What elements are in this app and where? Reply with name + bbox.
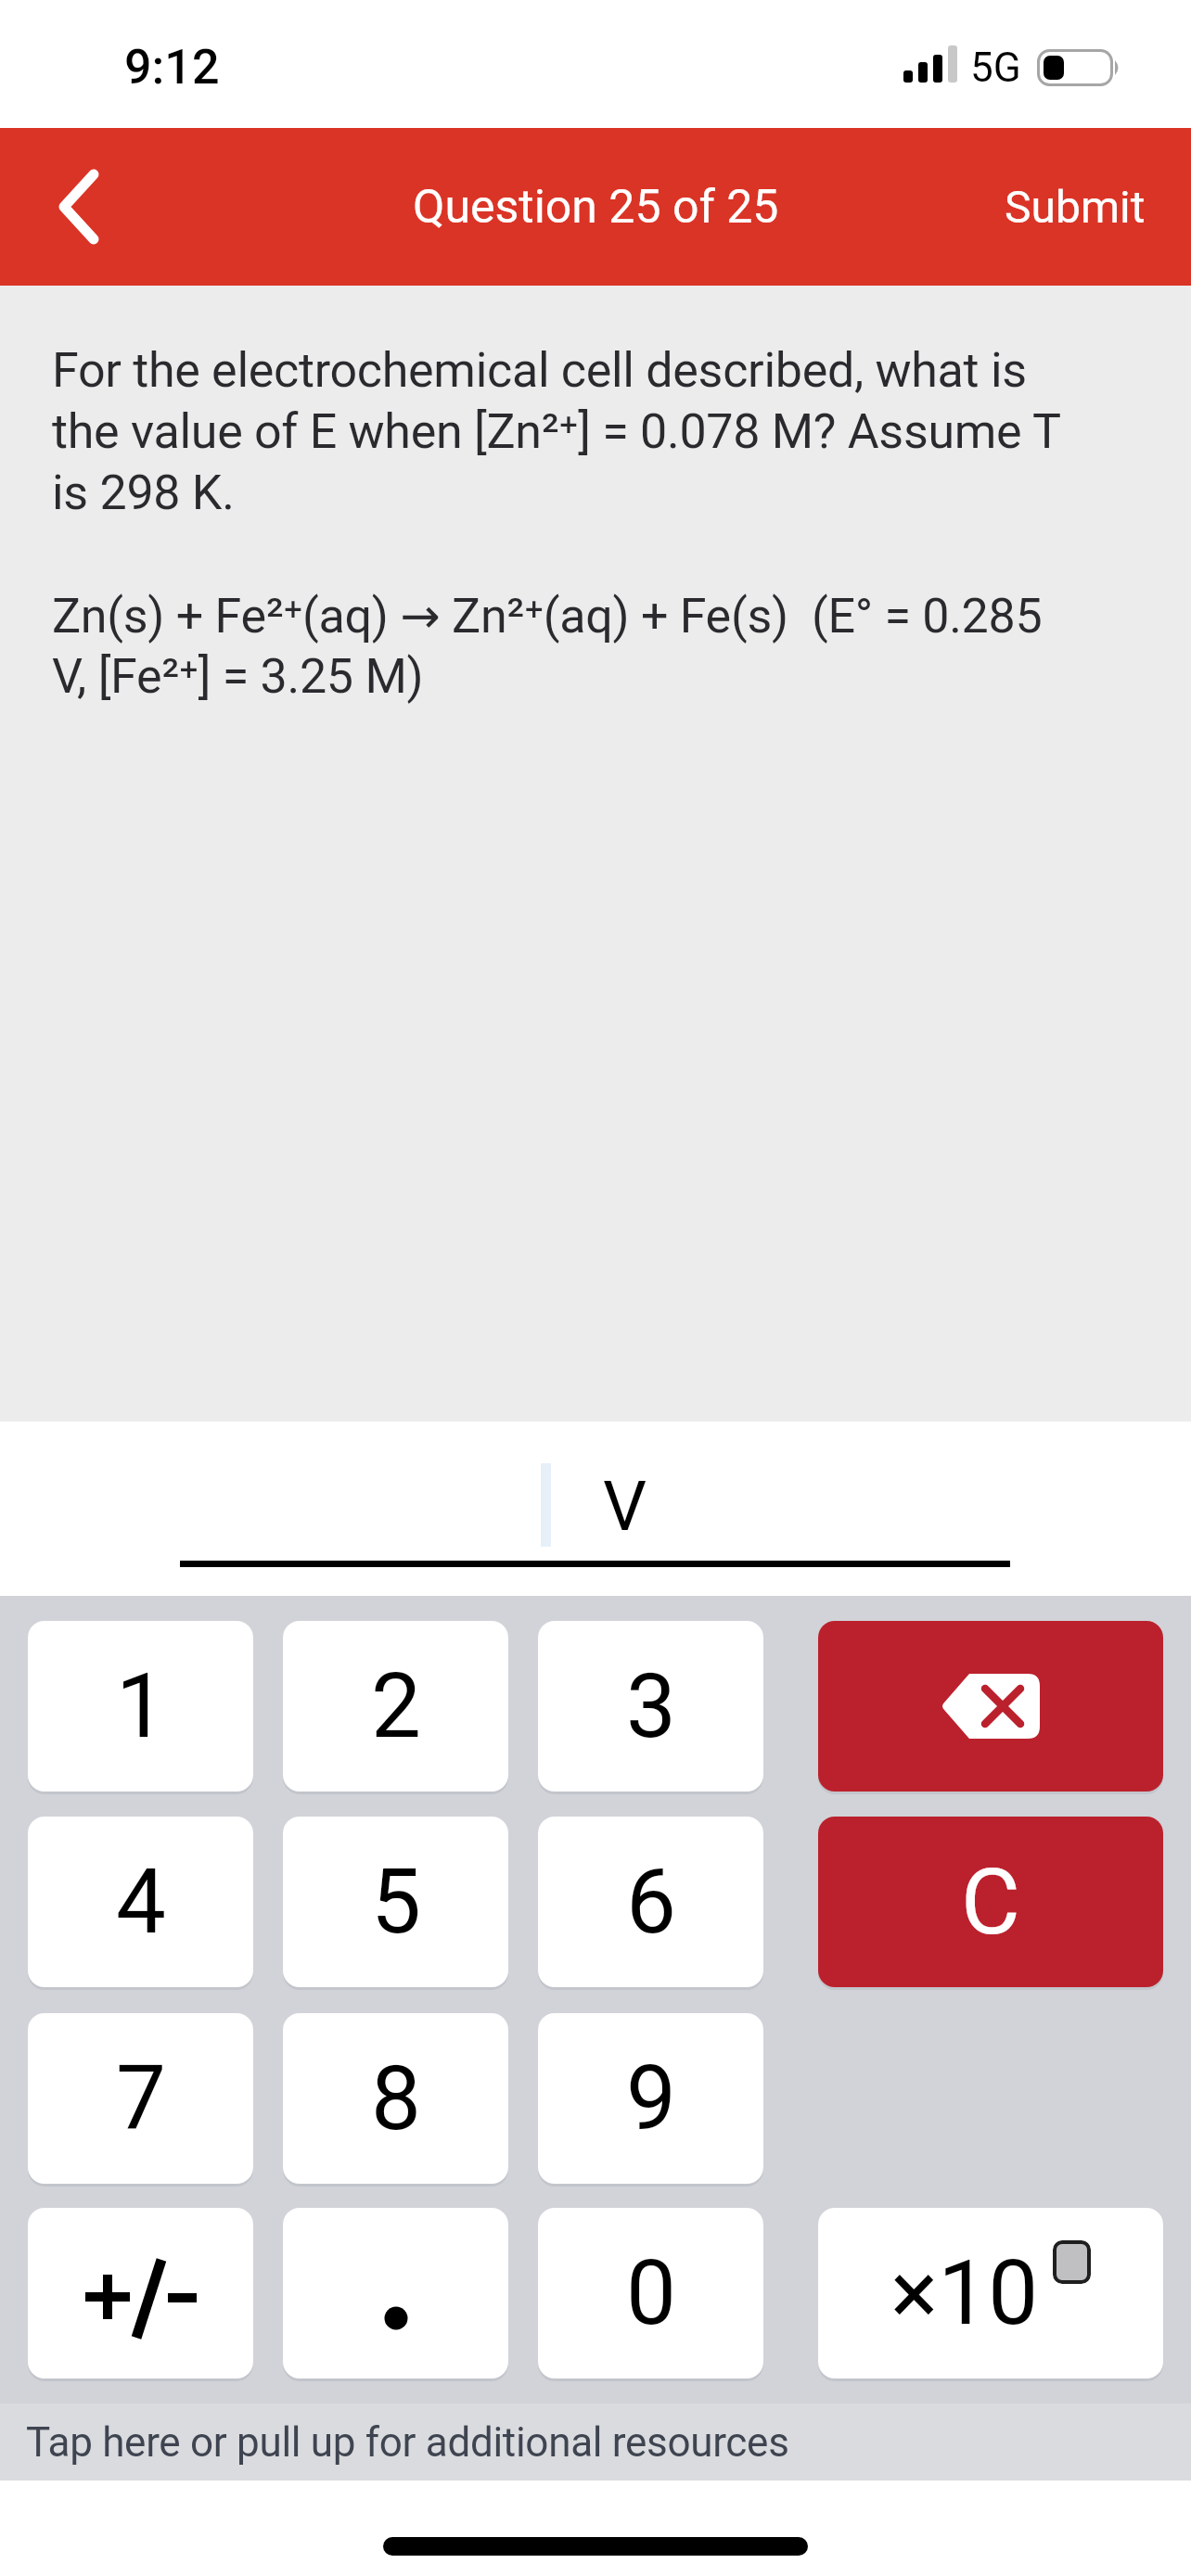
staticText: 9 — [626, 2047, 676, 2151]
button[interactable]: 2 — [283, 1621, 508, 1792]
staticText: 9:12 — [124, 39, 220, 96]
button[interactable] — [28, 2208, 253, 2378]
staticText: 5 — [371, 1850, 421, 1955]
staticText: 5G — [970, 44, 1021, 92]
staticText: V — [603, 1466, 647, 1547]
button[interactable]: 6 — [538, 1817, 763, 1987]
button[interactable]: V — [0, 1422, 1191, 1596]
button[interactable]: 0 — [538, 2208, 763, 2378]
button[interactable]: ×10 — [818, 2208, 1163, 2378]
button[interactable]: 8 — [283, 2013, 508, 2184]
button[interactable]: 1 — [28, 1621, 253, 1792]
staticText: 6 — [626, 1850, 676, 1955]
staticText: 2 — [371, 1654, 421, 1759]
button[interactable]: 3 — [538, 1621, 763, 1792]
staticText: Submit — [1005, 181, 1146, 233]
button[interactable]: 7 — [28, 2013, 253, 2184]
button[interactable] — [818, 1621, 1163, 1792]
staticText: C — [961, 1849, 1020, 1956]
button[interactable] — [283, 2208, 508, 2378]
button[interactable]: Tap here or pull up for additional resou… — [0, 2404, 1191, 2480]
staticText: 1 — [116, 1654, 166, 1759]
staticText: 0 — [626, 2241, 676, 2346]
staticText: 7 — [116, 2047, 166, 2151]
button[interactable] — [28, 156, 130, 258]
staticText: ×10 — [890, 2241, 1039, 2346]
staticText: Question 25 of 25 — [413, 180, 779, 235]
button[interactable]: Submit — [1005, 181, 1146, 233]
button[interactable]: 5 — [283, 1817, 508, 1987]
button[interactable]: C — [818, 1817, 1163, 1987]
staticText: 8 — [371, 2047, 421, 2151]
staticText: For the electrochemical cell described, … — [52, 342, 1061, 705]
button[interactable]: 4 — [28, 1817, 253, 1987]
staticText: 4 — [116, 1850, 166, 1955]
staticText: 3 — [626, 1654, 676, 1759]
staticText: Tap here or pull up for additional resou… — [26, 2418, 789, 2467]
button[interactable]: 9 — [538, 2013, 763, 2184]
